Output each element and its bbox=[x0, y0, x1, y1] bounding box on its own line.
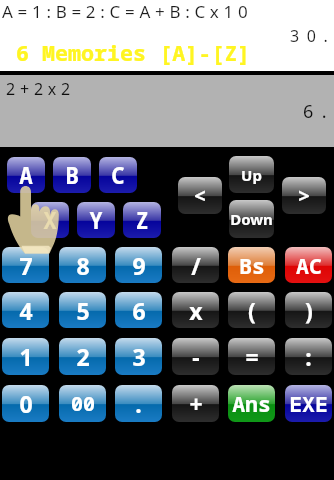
button[interactable]: 6 bbox=[115, 292, 162, 328]
button[interactable]: Previous bbox=[178, 177, 222, 214]
staticText: . bbox=[135, 388, 142, 419]
staticText: = bbox=[245, 341, 259, 372]
button[interactable]: 5 bbox=[59, 292, 106, 328]
button[interactable]: AC bbox=[285, 247, 332, 283]
button[interactable]: / bbox=[172, 247, 219, 283]
button[interactable]: 9 bbox=[115, 247, 162, 283]
button[interactable]: x bbox=[172, 292, 219, 328]
staticText: > bbox=[298, 182, 310, 209]
staticText: 3 bbox=[132, 341, 146, 372]
staticText: 30. bbox=[290, 25, 334, 47]
staticText: - bbox=[192, 341, 200, 372]
staticText: 0 bbox=[19, 388, 33, 419]
button[interactable]: = bbox=[228, 338, 275, 375]
staticText: 6. bbox=[303, 99, 334, 124]
button[interactable]: B bbox=[53, 157, 91, 193]
staticText: 5 bbox=[76, 295, 90, 326]
button[interactable]: EXE bbox=[285, 385, 332, 422]
button[interactable]: 2 bbox=[59, 338, 106, 375]
staticText: 4 bbox=[19, 295, 33, 326]
button[interactable]: Ans bbox=[228, 385, 275, 422]
staticText: x bbox=[189, 295, 203, 326]
staticText: Z bbox=[135, 205, 149, 236]
staticText: A=1:B=2:C=A+B:Cx10 bbox=[2, 0, 253, 23]
staticText: 1 bbox=[19, 341, 33, 372]
staticText: B bbox=[65, 160, 79, 191]
staticText: ( bbox=[248, 295, 256, 326]
staticText: Down bbox=[230, 209, 273, 229]
staticText: < bbox=[194, 182, 206, 209]
staticText: 8 bbox=[76, 250, 90, 281]
button[interactable]: C bbox=[99, 157, 137, 193]
button[interactable]: Bs bbox=[228, 247, 275, 283]
button[interactable]: ( bbox=[228, 292, 275, 328]
button[interactable]: 0 bbox=[2, 385, 49, 422]
button[interactable]: X bbox=[31, 202, 69, 238]
button[interactable]: Up bbox=[229, 156, 274, 193]
staticText: / bbox=[191, 250, 201, 281]
staticText: 6 Memories [A]-[Z] bbox=[16, 38, 251, 68]
button[interactable]: : bbox=[285, 338, 332, 375]
button[interactable]: . bbox=[115, 385, 162, 422]
button[interactable]: 7 bbox=[2, 247, 49, 283]
staticText: X bbox=[43, 205, 57, 236]
staticText: Up bbox=[241, 165, 262, 185]
staticText: 00 bbox=[71, 390, 95, 417]
button[interactable]: Down bbox=[229, 200, 274, 238]
staticText: : bbox=[305, 341, 312, 372]
staticText: Y bbox=[89, 205, 103, 236]
button[interactable]: A bbox=[7, 157, 45, 193]
staticText: EXE bbox=[289, 389, 328, 418]
staticText: 2 bbox=[76, 341, 90, 372]
staticText: + bbox=[189, 388, 203, 419]
button[interactable]: 8 bbox=[59, 247, 106, 283]
button[interactable]: 00 bbox=[59, 385, 106, 422]
staticText: C bbox=[111, 160, 125, 191]
staticText: 9 bbox=[132, 250, 146, 281]
staticText: ) bbox=[305, 295, 313, 326]
staticText: Ans bbox=[232, 389, 271, 418]
staticText: AC bbox=[296, 251, 322, 280]
button[interactable]: 1 bbox=[2, 338, 49, 375]
button[interactable]: Next bbox=[282, 177, 326, 214]
button[interactable]: Y bbox=[77, 202, 115, 238]
staticText: A bbox=[19, 160, 33, 191]
button[interactable]: ) bbox=[285, 292, 332, 328]
staticText: 2+2x2 bbox=[6, 78, 76, 100]
button[interactable]: Z bbox=[123, 202, 161, 238]
staticText: Bs bbox=[239, 251, 265, 280]
staticText: 6 bbox=[132, 295, 146, 326]
button[interactable]: - bbox=[172, 338, 219, 375]
button[interactable]: 4 bbox=[2, 292, 49, 328]
button[interactable]: + bbox=[172, 385, 219, 422]
button[interactable]: 3 bbox=[115, 338, 162, 375]
staticText: 7 bbox=[19, 250, 33, 281]
